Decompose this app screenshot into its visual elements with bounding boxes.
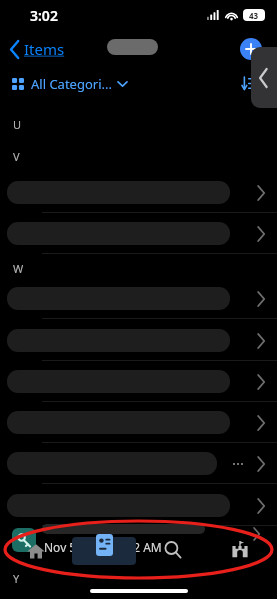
button[interactable]: Password manager bbox=[12, 528, 36, 552]
staticText: 3:02 bbox=[30, 6, 58, 25]
button[interactable] bbox=[0, 278, 277, 319]
button[interactable]: Sort bbox=[239, 74, 259, 94]
staticText: All Categori... bbox=[31, 75, 112, 93]
button[interactable] bbox=[0, 485, 277, 526]
button[interactable]: Items bbox=[6, 35, 69, 63]
staticText: Nov 5, 2018 1:52 AM bbox=[44, 539, 162, 555]
button[interactable] bbox=[0, 172, 277, 213]
staticText: Items bbox=[24, 39, 65, 59]
button[interactable] bbox=[0, 361, 277, 402]
button[interactable]: Card bbox=[96, 534, 113, 556]
button[interactable]: Add bbox=[240, 38, 262, 60]
button[interactable]: All Categori... bbox=[10, 73, 129, 95]
button[interactable] bbox=[0, 443, 277, 484]
button[interactable] bbox=[0, 213, 277, 254]
button[interactable]: Open panel bbox=[251, 47, 277, 108]
button[interactable]: Search bbox=[163, 540, 183, 560]
button[interactable]: Vault bbox=[230, 540, 250, 560]
staticText: 43 bbox=[249, 10, 259, 21]
staticText: V bbox=[13, 149, 20, 164]
button[interactable]: Home bbox=[26, 541, 46, 561]
staticText: W bbox=[13, 261, 24, 276]
staticText: U bbox=[13, 117, 22, 132]
button[interactable] bbox=[0, 320, 277, 361]
staticText: Y bbox=[13, 571, 20, 586]
button[interactable] bbox=[0, 402, 277, 443]
